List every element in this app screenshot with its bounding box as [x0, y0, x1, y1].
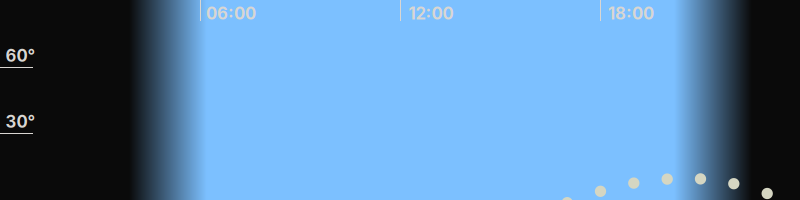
staticText: 12:00 — [408, 3, 453, 24]
staticText: 30° — [5, 112, 35, 132]
staticText: 18:00 — [608, 3, 654, 24]
staticText: 60° — [5, 46, 35, 66]
staticText: 06:00 — [206, 3, 256, 24]
